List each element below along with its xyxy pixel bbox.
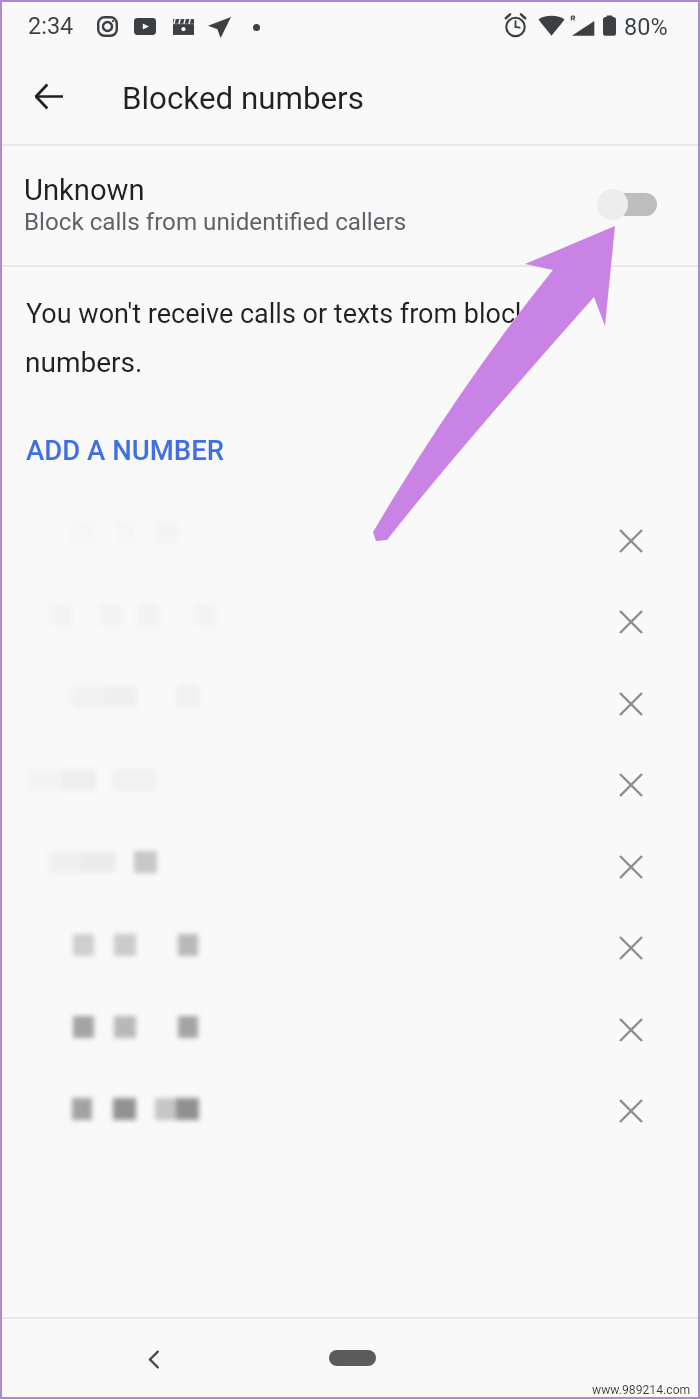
button[interactable]: Remove blocked number [2,986,698,1068]
button[interactable]: Remove blocked number [611,1010,651,1050]
button[interactable]: Back [133,1338,175,1380]
staticText: Blocked numbers [122,80,364,117]
button[interactable]: Remove blocked number [611,928,651,968]
button[interactable]: ADD A NUMBER [16,426,234,474]
button[interactable]: Back [25,73,72,120]
staticText: numbers. [25,346,143,379]
staticText: Unknown [24,173,145,207]
button[interactable]: Remove blocked number [611,684,651,724]
staticText: 80% [624,13,668,41]
staticText: ADD A NUMBER [26,434,224,466]
button[interactable]: Remove blocked number [611,765,651,805]
button[interactable]: Remove blocked number [611,1091,651,1131]
button[interactable]: Remove blocked number [2,904,698,986]
button[interactable]: Remove blocked number [611,602,651,642]
button[interactable]: Remove blocked number [611,847,651,887]
staticText: Block calls from unidentified callers [24,208,407,236]
button[interactable]: Remove blocked number [2,821,698,903]
staticText: 2:34 [28,12,74,40]
button[interactable]: Remove blocked number [2,574,698,656]
button[interactable]: Remove blocked number [2,739,698,821]
staticText: www.989214.com [592,1383,691,1397]
button[interactable]: Block unknown callers toggle [590,182,666,226]
staticText: You won't receive calls or texts from bl… [26,298,559,330]
button[interactable]: Remove blocked number [611,521,651,561]
button[interactable]: Remove blocked number [2,492,698,574]
button[interactable]: Home [329,1350,376,1366]
button[interactable]: Unknown [2,144,698,263]
button[interactable]: Remove blocked number [2,1068,698,1150]
button[interactable]: Remove blocked number [2,656,698,738]
